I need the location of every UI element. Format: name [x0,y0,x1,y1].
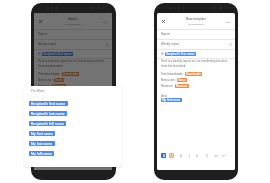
button[interactable]: Recipient's first name [29,101,68,106]
button[interactable]: Report [157,29,235,39]
staticText: Recipient's first name [31,101,66,106]
staticText: Total downloads: [38,72,61,76]
button[interactable]: Highlight color [46,153,51,158]
staticText: My last name [31,141,53,146]
staticText: Recipient's first name [43,52,72,56]
button[interactable]: Close [161,19,166,24]
staticText: My first name [31,131,53,136]
staticText: Revenue: [161,84,174,88]
button[interactable]: Close [38,19,43,24]
button[interactable]: Report [34,29,112,39]
staticText: Weekly report [161,42,180,46]
staticText: Downloads [63,72,78,76]
staticText: Report [38,32,47,36]
staticText: New template [186,17,207,21]
button[interactable]: Text color [161,153,166,158]
button[interactable]: Weekly report [34,39,112,49]
staticText: Report [161,32,170,36]
button[interactable]: Downloads [62,72,79,76]
button[interactable]: Recipient's first name [165,52,196,56]
staticText: Users [178,78,186,82]
staticText: Hi [38,52,41,56]
staticText: Downloads [186,72,201,76]
staticText: A [163,154,165,158]
button[interactable]: Text color [38,153,43,158]
staticText: Here is a weekly report on our marketing… [161,59,231,68]
staticText: I [189,154,191,158]
staticText: B [180,154,182,158]
button[interactable]: My last name [29,141,55,146]
button[interactable]: Insert link [213,153,218,158]
staticText: My first name [39,98,58,102]
staticText: Revenue: [38,84,51,88]
button[interactable]: Recipient's full name [29,121,66,126]
staticText: New users: [38,78,53,82]
staticText: New users: [161,78,176,82]
staticText: Recipient's full name [31,121,64,126]
button[interactable]: Highlight color [169,153,174,158]
button[interactable]: Weekly report [157,39,235,49]
staticText: Pre-fillers [31,89,45,93]
button[interactable]: S [204,153,209,158]
button[interactable]: Downloads [185,72,202,76]
staticText: Here is a weekly report on our marketing… [38,59,108,68]
staticText: U [196,154,199,158]
staticText: Revenue [53,84,65,88]
staticText: Recipient's last name [31,111,65,116]
staticText: Hi [161,52,164,56]
button[interactable]: My full name [29,151,54,156]
staticText: Weekly report [38,42,57,46]
button[interactable]: U [195,153,200,158]
staticText: SAVE [225,20,231,23]
button[interactable]: I [187,153,192,158]
button[interactable]: Users [177,78,187,82]
staticText: Recipient's first name [166,52,195,56]
staticText: ↩ [222,154,225,158]
staticText: My first name [162,98,181,102]
button[interactable]: My first name [161,98,182,102]
button[interactable]: Recipient's first name [42,52,73,56]
button[interactable]: Revenue [175,84,189,88]
staticText: Revenue [176,84,188,88]
button[interactable]: My first name [38,98,59,102]
staticText: My Templates [188,22,204,25]
button[interactable]: SAVE [224,19,232,24]
staticText: Report [68,17,78,21]
button[interactable]: My first name [29,131,55,136]
staticText: Users [55,78,63,82]
button[interactable]: Undo [221,153,226,158]
staticText: My full name [31,151,52,156]
staticText: Best, [161,94,168,98]
button[interactable]: Users [54,78,64,82]
staticText: S [206,154,208,158]
staticText: My Templates [65,22,81,25]
staticText: SAVE [102,20,108,23]
button[interactable]: Revenue [52,84,66,88]
button[interactable]: SAVE [101,19,109,24]
button[interactable]: B [178,153,183,158]
button[interactable]: Recipient's last name [29,111,67,116]
staticText: Total downloads: [161,72,184,76]
staticText: A [40,154,42,158]
